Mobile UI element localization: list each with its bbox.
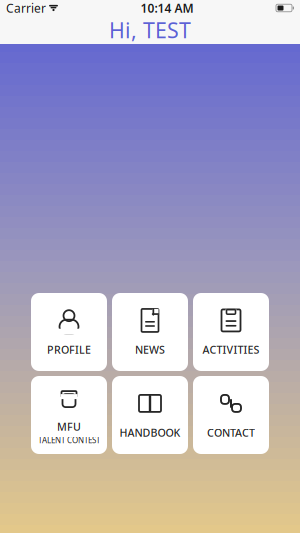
- staticText: NEWS: [135, 342, 165, 357]
- button[interactable]: NEWS: [112, 293, 188, 371]
- staticText: PROFILE: [47, 342, 91, 357]
- staticText: Carrier: [6, 0, 46, 16]
- button[interactable]: HANDBOOK: [112, 376, 188, 454]
- staticText: CONTACT: [207, 425, 255, 440]
- staticText: 10:14 AM: [140, 0, 193, 16]
- button[interactable]: ACTIVITIES: [193, 293, 269, 371]
- staticText: MFU: [57, 420, 81, 434]
- staticText: TALENT CONTEST: [38, 435, 100, 445]
- button[interactable]: MFU: [31, 376, 107, 454]
- button[interactable]: CONTACT: [193, 376, 269, 454]
- staticText: HANDBOOK: [119, 425, 180, 440]
- staticText: Hi, TEST: [109, 16, 191, 44]
- staticText: ACTIVITIES: [202, 342, 259, 357]
- button[interactable]: PROFILE: [31, 293, 107, 371]
